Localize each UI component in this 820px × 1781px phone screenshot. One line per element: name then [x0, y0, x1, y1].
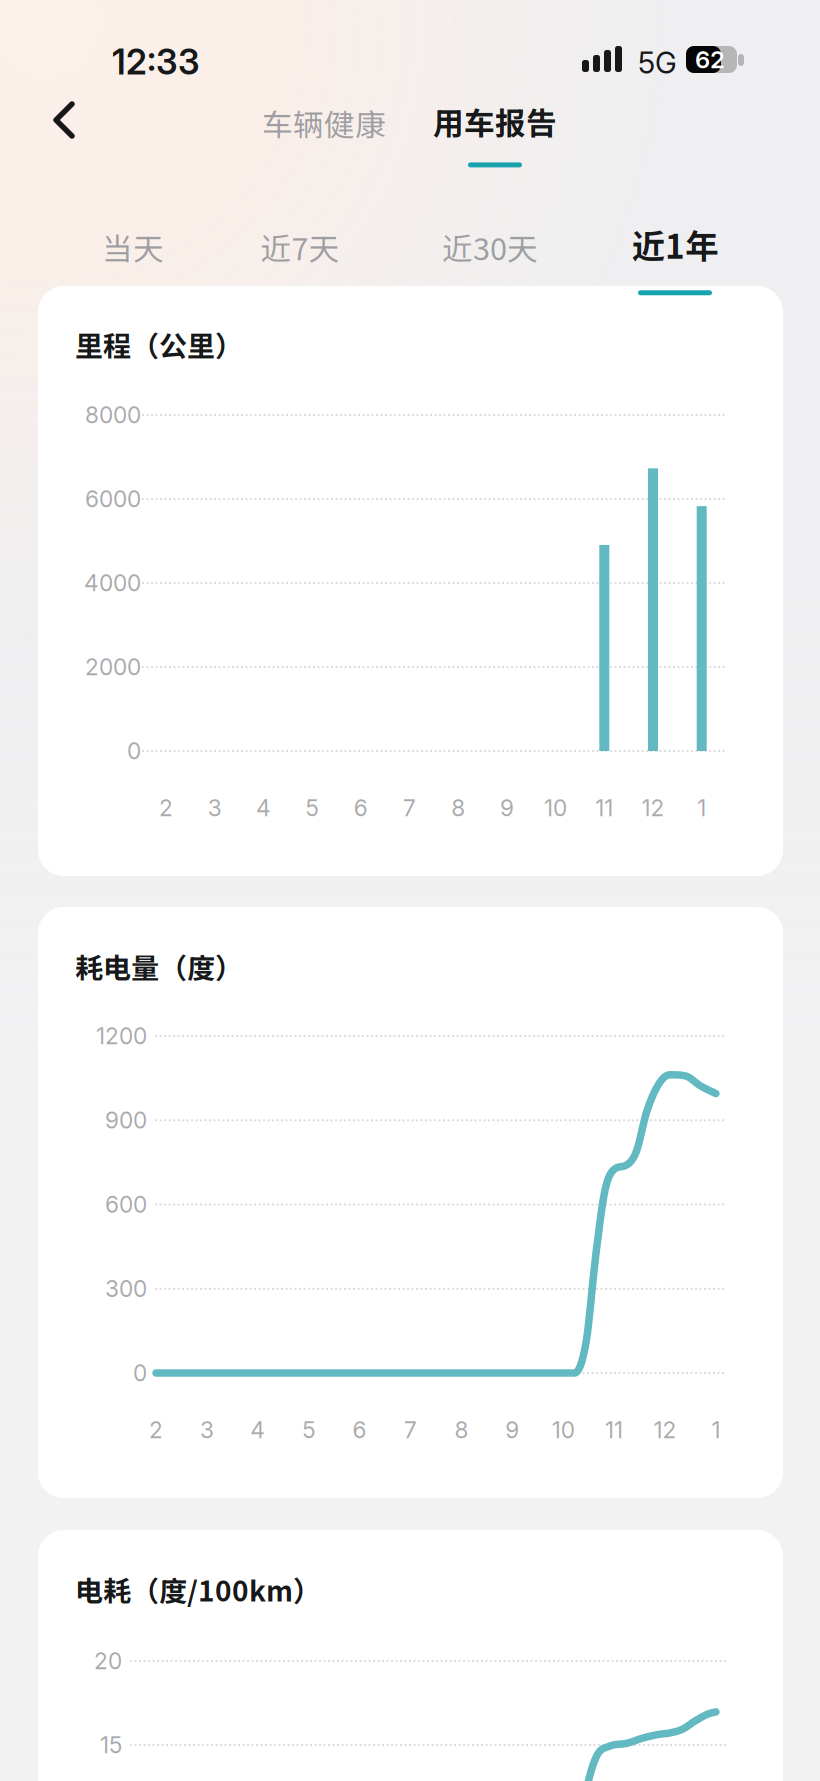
staticText: 10	[552, 1416, 575, 1444]
staticText: 耗电量（度）	[75, 946, 243, 986]
staticText: 15	[100, 1731, 122, 1759]
staticText: 12:33	[112, 41, 200, 83]
staticText: 1	[711, 1416, 720, 1444]
staticText: 用车报告	[433, 99, 557, 143]
staticText: 电耗（度/100km）	[75, 1569, 321, 1609]
staticText: 6000	[85, 485, 141, 513]
staticText: 300	[105, 1275, 147, 1302]
button[interactable]: 当天	[39, 214, 227, 280]
staticText: 11	[595, 794, 613, 822]
staticText: 4000	[84, 569, 141, 597]
staticText: 600	[105, 1191, 147, 1218]
button[interactable]: Back	[26, 88, 102, 152]
staticText: 5G	[638, 45, 677, 80]
staticText: 5	[306, 794, 319, 822]
staticText: 20	[94, 1647, 122, 1675]
staticText: 4	[256, 794, 271, 822]
staticText: 3	[200, 1416, 214, 1444]
staticText: 10	[544, 794, 567, 822]
staticText: 62	[695, 45, 725, 74]
button[interactable]: 近7天	[206, 214, 394, 280]
staticText: 9	[505, 1416, 519, 1444]
staticText: 8000	[85, 401, 141, 429]
staticText: 1	[697, 794, 706, 822]
staticText: 12	[653, 1416, 676, 1444]
staticText: 4	[250, 1416, 265, 1444]
staticText: 5	[302, 1416, 315, 1444]
staticText: 8	[454, 1416, 468, 1444]
staticText: 6	[353, 1416, 367, 1444]
button[interactable]: 用车报告	[415, 99, 575, 181]
staticText: 2000	[85, 653, 141, 681]
staticText: 7	[404, 1416, 417, 1444]
staticText: 近7天	[260, 225, 339, 269]
staticText: 9	[500, 794, 514, 822]
staticText: 900	[105, 1106, 147, 1134]
staticText: 3	[208, 794, 222, 822]
staticText: 8	[451, 794, 465, 822]
button[interactable]: 车辆健康	[244, 95, 404, 151]
staticText: 当天	[102, 225, 164, 269]
staticText: 里程（公里）	[75, 324, 243, 364]
staticText: 11	[605, 1416, 623, 1444]
button[interactable]: 近1年	[581, 220, 769, 306]
staticText: 0	[133, 1359, 147, 1387]
staticText: 车辆健康	[262, 101, 386, 145]
button[interactable]: 近30天	[396, 214, 584, 280]
staticText: 7	[403, 794, 416, 822]
staticText: 2	[149, 1416, 163, 1444]
staticText: 0	[127, 737, 141, 765]
staticText: 6	[354, 794, 368, 822]
staticText: 12	[641, 794, 664, 822]
staticText: 近1年	[632, 220, 718, 268]
staticText: 1200	[96, 1022, 147, 1050]
staticText: 近30天	[442, 225, 538, 269]
staticText: 2	[159, 794, 173, 822]
